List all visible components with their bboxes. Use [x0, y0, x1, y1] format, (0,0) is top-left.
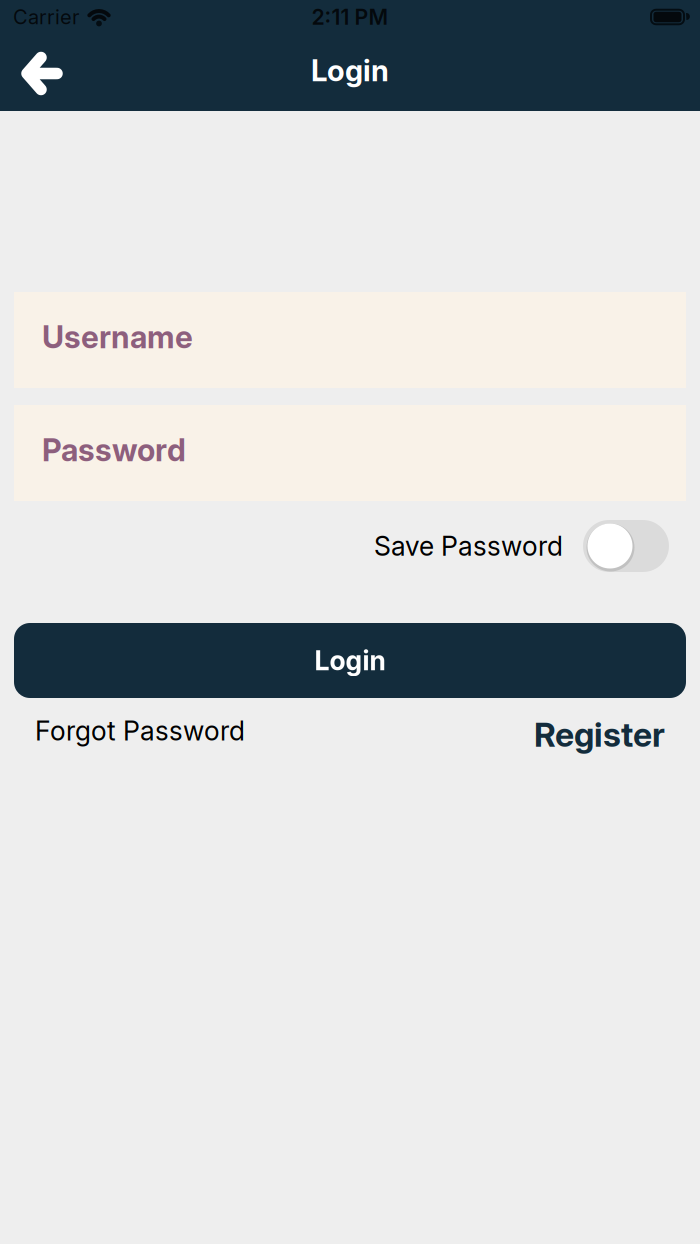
staticText: Login — [311, 53, 389, 88]
staticText: 2:11 PM — [311, 4, 388, 30]
button[interactable]: Login — [14, 623, 686, 698]
staticText: Login — [314, 645, 385, 676]
staticText: Carrier — [13, 5, 79, 29]
staticText: Forgot Password — [35, 715, 245, 746]
button[interactable]: Username — [14, 292, 686, 388]
staticText: Password — [42, 432, 186, 468]
button[interactable]: Back — [21, 51, 62, 94]
button[interactable]: Forgot Password — [35, 715, 245, 746]
staticText: Save Password — [374, 530, 563, 562]
button[interactable]: Save Password — [583, 520, 669, 572]
staticText: Username — [42, 319, 193, 355]
staticText: Register — [534, 715, 665, 754]
button[interactable]: Register — [534, 715, 665, 754]
button[interactable]: Password — [14, 405, 686, 501]
